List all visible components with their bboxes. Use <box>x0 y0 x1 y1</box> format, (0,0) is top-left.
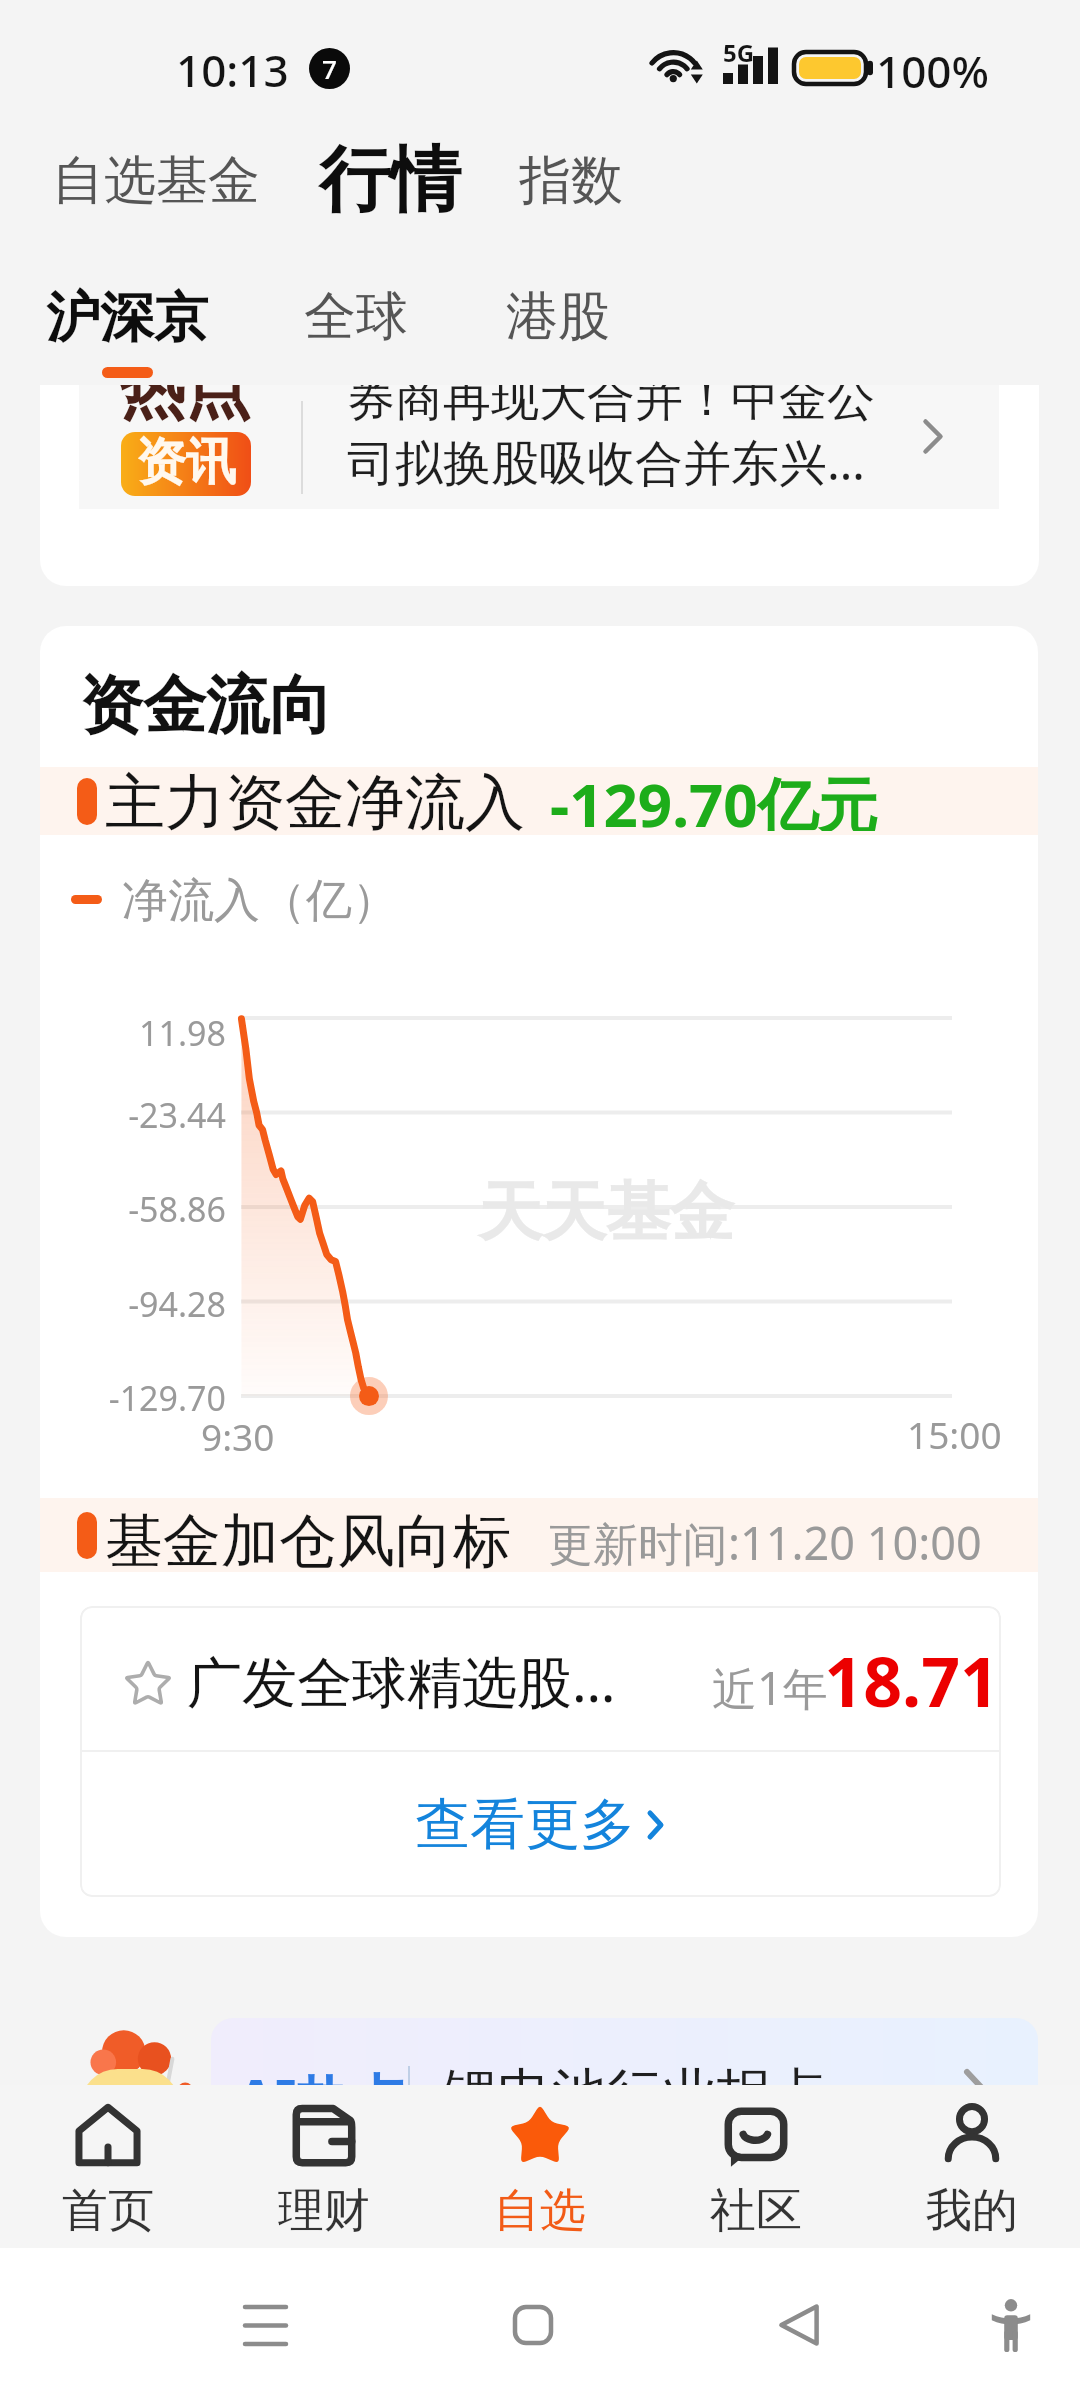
button[interactable]: Accessibility <box>946 2260 1076 2390</box>
staticText: 锂电池行业拐点 <box>442 2060 827 2129</box>
staticText: 行情 <box>319 136 461 225</box>
staticText: 我的 <box>926 2182 1018 2240</box>
button[interactable]: 首页 <box>0 2085 216 2250</box>
staticText: 基金加仓风向标 <box>105 1505 511 1578</box>
staticText: 理财 <box>278 2182 370 2240</box>
button[interactable]: 广发全球精选股… <box>80 1606 1001 1750</box>
button[interactable]: 社区 <box>648 2085 864 2250</box>
staticText: 自选基金 <box>52 148 260 214</box>
button[interactable]: 理财 <box>216 2085 432 2250</box>
button[interactable]: 行情 <box>300 124 480 237</box>
button[interactable]: 热点 <box>79 385 999 509</box>
staticText: 资金流向 <box>80 666 332 745</box>
staticText: 热点 <box>119 385 251 430</box>
staticText: 全球 <box>304 284 408 350</box>
staticText: 5G <box>723 36 755 69</box>
button[interactable]: 指数 <box>500 136 642 226</box>
staticText: -94.28 <box>40 1281 226 1327</box>
staticText: 首页 <box>62 2182 154 2240</box>
button[interactable]: 我的 <box>864 2085 1080 2250</box>
button[interactable]: 自选基金 <box>33 136 279 226</box>
button[interactable]: 主力资金净流入 <box>40 767 1038 835</box>
staticText: 11.98 <box>40 1010 226 1056</box>
staticText: 司拟换股吸收合并东兴… <box>347 429 865 493</box>
button[interactable]: Back <box>734 2260 864 2390</box>
staticText: 指数 <box>519 148 623 214</box>
staticText: 查看更多 <box>415 1790 635 1859</box>
button[interactable]: 港股 <box>488 274 628 360</box>
button[interactable]: 自选 <box>432 2085 648 2250</box>
button[interactable]: Home <box>468 2260 598 2390</box>
staticText: 资讯 <box>136 432 236 494</box>
staticText: 15:00 <box>907 1409 1002 1459</box>
staticText: AI热点 <box>237 2061 407 2136</box>
button[interactable]: Recent apps <box>200 2260 330 2390</box>
staticText: 港股 <box>506 284 610 350</box>
staticText: 广发全球精选股… <box>187 1643 616 1718</box>
staticText: 更新时间:11.20 10:00 <box>548 1512 982 1573</box>
staticText: -58.86 <box>40 1186 226 1232</box>
staticText: 券商再现大合并！中金公 <box>347 385 875 429</box>
staticText: 净流入（亿） <box>122 872 398 930</box>
staticText: 近1年 <box>712 1657 828 1718</box>
button[interactable]: 沪深京 <box>28 274 226 388</box>
button[interactable]: AI热点 <box>211 2018 1038 2182</box>
staticText: 18.71 <box>700 1634 999 1727</box>
staticText: -23.44 <box>40 1092 226 1138</box>
staticText: 沪深京 <box>46 284 208 352</box>
button[interactable]: 查看更多 <box>80 1752 1001 1897</box>
staticText: 自选 <box>494 2182 586 2240</box>
button[interactable]: 基金加仓风向标 <box>40 1498 1038 1572</box>
staticText: 社区 <box>710 2182 802 2240</box>
staticText: 10:13 <box>176 40 289 100</box>
staticText: 7 <box>322 51 337 86</box>
staticText: 主力资金净流入 <box>105 765 525 833</box>
staticText: -129.70亿元 <box>550 763 878 831</box>
staticText: -129.70 <box>40 1375 226 1421</box>
staticText: 100% <box>876 41 989 101</box>
button[interactable]: 全球 <box>286 274 426 360</box>
staticText: 9:30 <box>201 1411 275 1461</box>
staticText: 天天基金 <box>478 1172 734 1253</box>
